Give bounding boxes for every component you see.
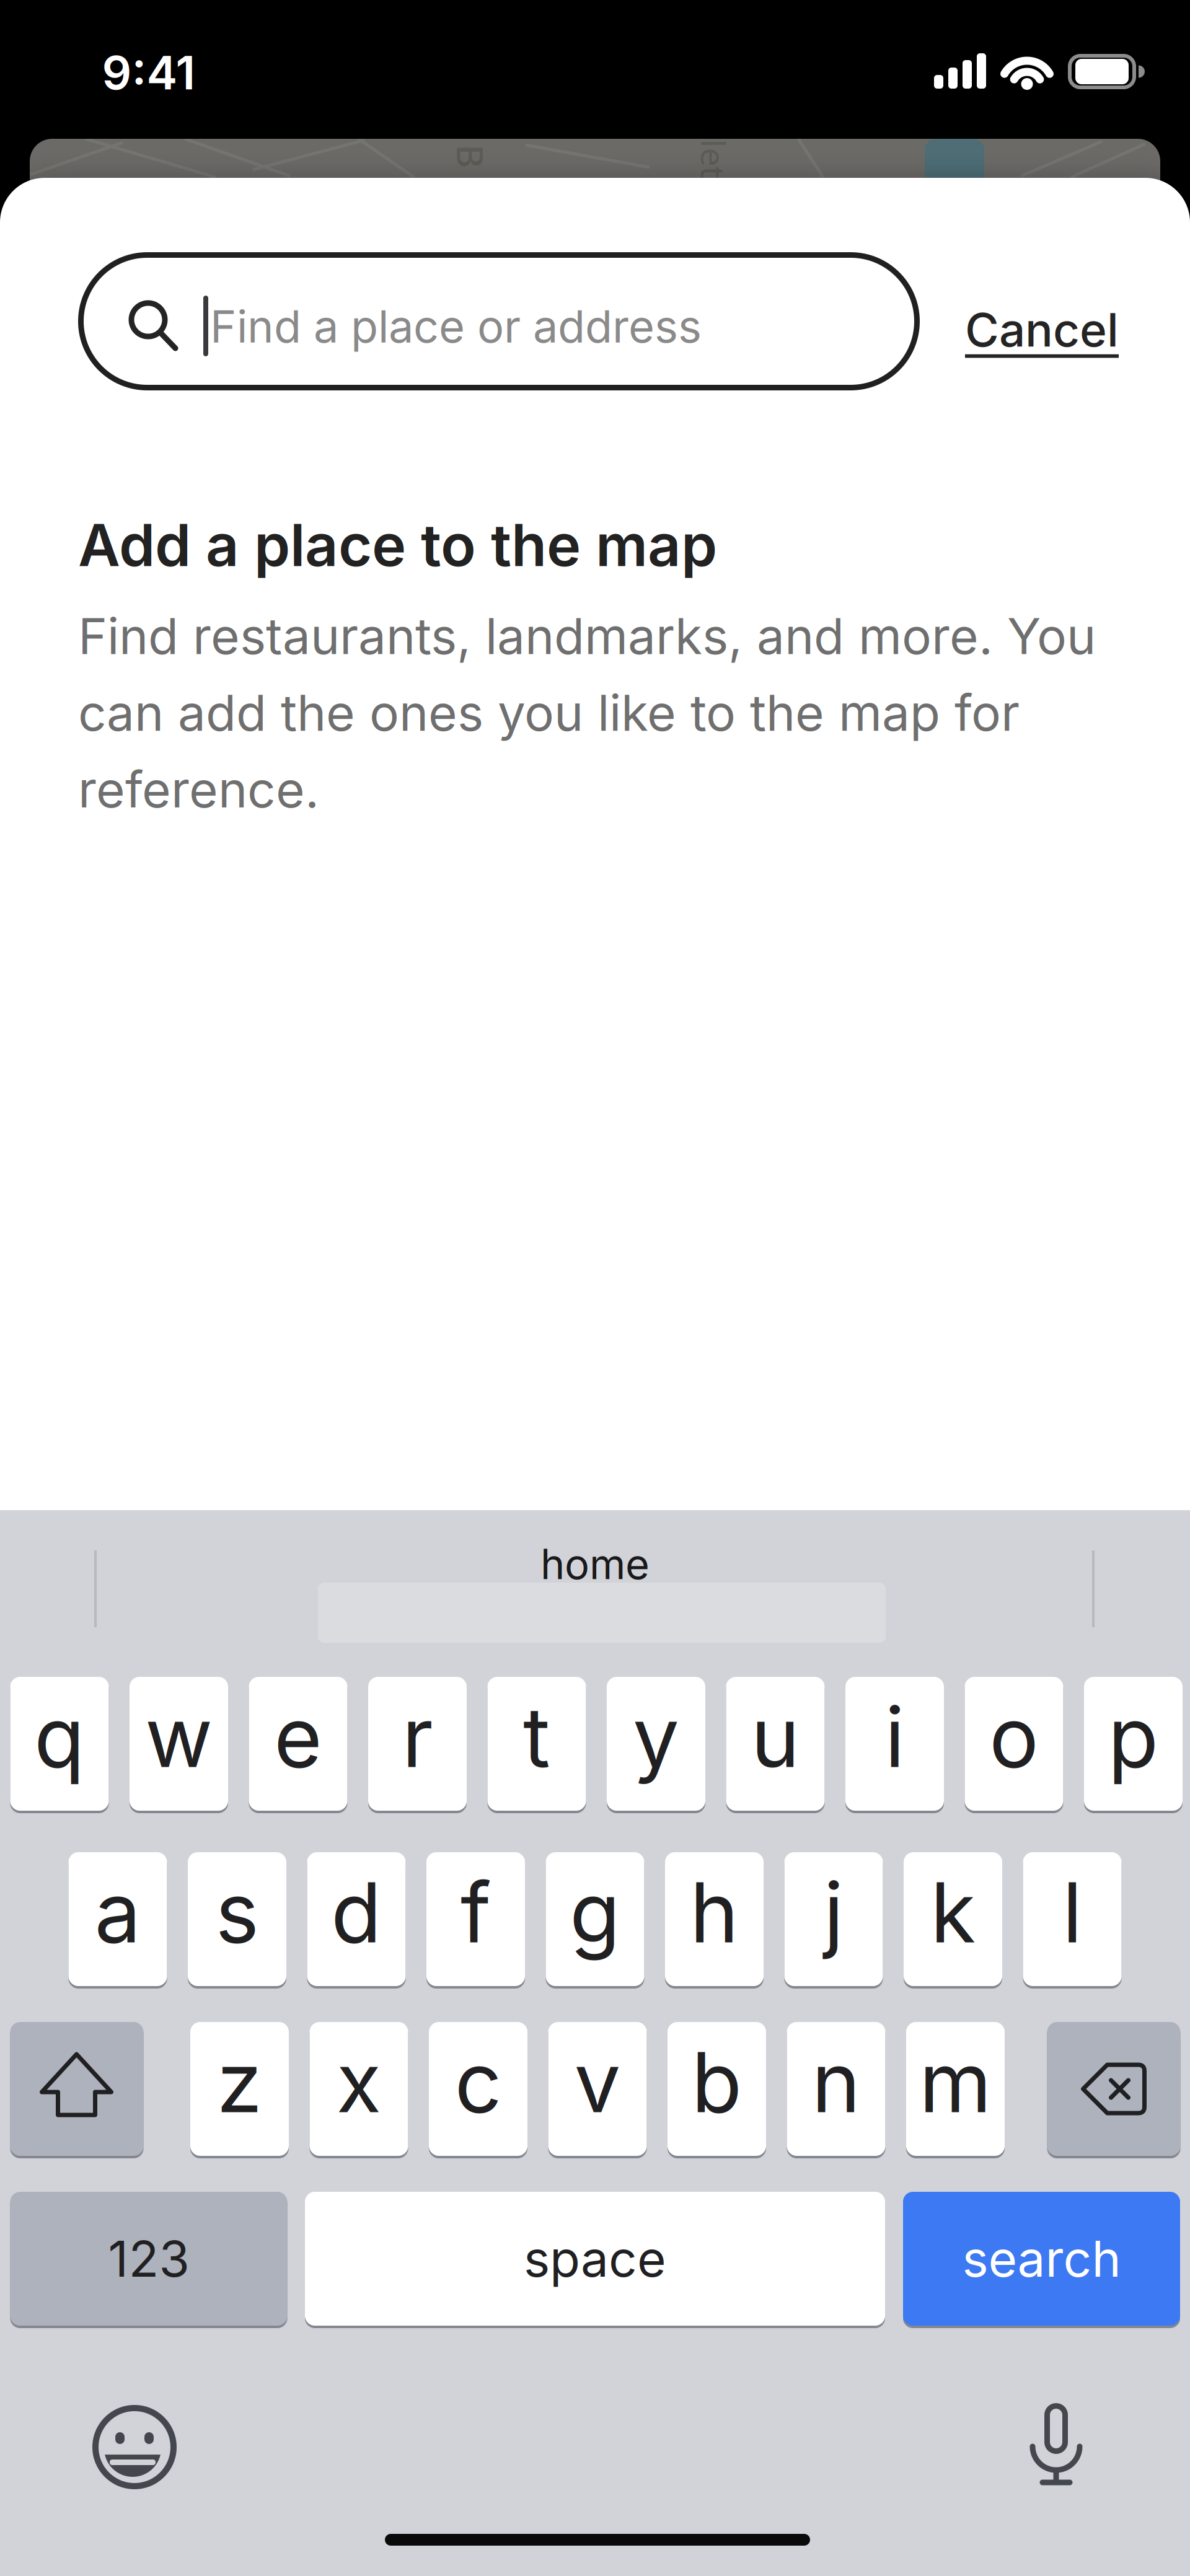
staticText: k [930, 1862, 976, 1962]
button[interactable]: e [249, 1677, 347, 1811]
button[interactable]: j [784, 1852, 883, 1986]
staticText: d [331, 1862, 382, 1962]
staticText: i [885, 1687, 905, 1787]
button[interactable]: n [787, 2022, 885, 2156]
staticText: v [574, 2032, 621, 2132]
staticText: search [962, 2229, 1121, 2289]
staticText: p [1108, 1687, 1159, 1787]
button[interactable]: d [307, 1852, 406, 1986]
button[interactable]: b [668, 2022, 766, 2156]
button[interactable]: search [903, 2192, 1180, 2326]
staticText: e [274, 1687, 322, 1787]
staticText: 9:41 [102, 44, 196, 100]
button[interactable]: t [487, 1677, 586, 1811]
button[interactable]: y [607, 1677, 705, 1811]
button[interactable]: a [68, 1852, 167, 1986]
staticText: y [633, 1687, 679, 1787]
staticText: x [336, 2032, 381, 2132]
staticText: let [694, 137, 734, 181]
staticText: home [540, 1539, 650, 1589]
button[interactable]: f [426, 1852, 525, 1986]
button[interactable]: Delete [1047, 2022, 1180, 2156]
button[interactable]: 123 [10, 2192, 287, 2326]
button[interactable]: home [540, 1539, 650, 1589]
staticText: reference. [78, 759, 319, 819]
button[interactable]: s [188, 1852, 286, 1986]
button[interactable]: p [1084, 1677, 1183, 1811]
staticText: B [459, 132, 483, 180]
button[interactable]: Shift [10, 2022, 143, 2156]
staticText: j [824, 1862, 844, 1962]
staticText: f [461, 1862, 491, 1962]
staticText: l [1062, 1862, 1082, 1962]
button[interactable]: h [665, 1852, 764, 1986]
button[interactable]: k [904, 1852, 1002, 1986]
staticText: Add a place to the map [78, 510, 717, 580]
button[interactable]: space [305, 2192, 885, 2326]
button[interactable]: o [965, 1677, 1063, 1811]
staticText: m [919, 2032, 992, 2132]
staticText: 123 [108, 2229, 189, 2289]
button[interactable]: m [906, 2022, 1005, 2156]
staticText: a [95, 1862, 141, 1962]
staticText: Find restaurants, landmarks, and more. Y… [78, 606, 1096, 666]
button[interactable]: c [429, 2022, 527, 2156]
staticText: w [145, 1687, 213, 1787]
button[interactable]: Find a place or address [78, 252, 920, 390]
button[interactable]: Emoji [92, 2405, 177, 2489]
button[interactable]: u [726, 1677, 825, 1811]
button[interactable]: Dictation [1025, 2403, 1087, 2485]
staticText: t [523, 1687, 550, 1787]
button[interactable]: l [1023, 1852, 1122, 1986]
staticText: s [215, 1862, 259, 1962]
button[interactable]: w [130, 1677, 228, 1811]
staticText: can add the ones you like to the map for [78, 683, 1020, 743]
staticText: n [812, 2032, 861, 2132]
staticText: Cancel [965, 302, 1119, 358]
staticText: b [691, 2032, 742, 2132]
button[interactable]: x [310, 2022, 408, 2156]
staticText: u [751, 1687, 800, 1787]
button[interactable]: r [368, 1677, 467, 1811]
staticText: space [524, 2229, 666, 2289]
staticText: o [989, 1687, 1039, 1787]
button[interactable]: v [548, 2022, 647, 2156]
staticText: c [455, 2032, 502, 2132]
staticText: q [34, 1687, 85, 1787]
staticText: z [217, 2032, 262, 2132]
staticText: r [402, 1687, 433, 1787]
staticText: h [690, 1862, 739, 1962]
button[interactable]: q [10, 1677, 109, 1811]
button[interactable]: Cancel [965, 302, 1119, 358]
button[interactable]: g [546, 1852, 644, 1986]
button[interactable]: i [845, 1677, 944, 1811]
staticText: Find a place or address [210, 299, 702, 353]
button[interactable]: z [190, 2022, 289, 2156]
staticText: g [570, 1862, 620, 1962]
